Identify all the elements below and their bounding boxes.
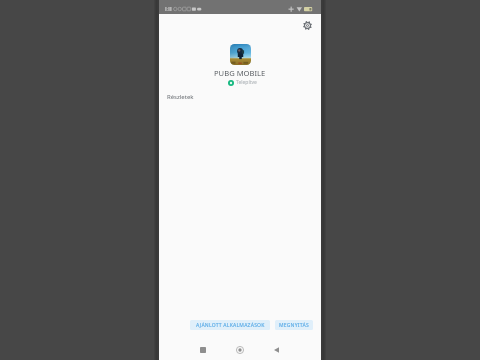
button[interactable]: Home [232, 342, 247, 357]
button[interactable]: Back [269, 342, 284, 357]
staticText: Telepítve [236, 79, 257, 86]
staticText: MEGNYITÁS [279, 322, 309, 329]
button[interactable]: MEGNYITÁS [275, 320, 313, 330]
button[interactable]: Részletek [159, 90, 321, 104]
button[interactable]: AJÁNLOTT ALKALMAZÁSOK [190, 320, 270, 330]
staticText: PUBG MOBILE [214, 68, 266, 78]
button[interactable]: Recent apps [195, 342, 210, 357]
staticText: AJÁNLOTT ALKALMAZÁSOK [196, 322, 265, 329]
staticText: Részletek [167, 93, 194, 101]
button[interactable]: Settings [299, 17, 315, 33]
